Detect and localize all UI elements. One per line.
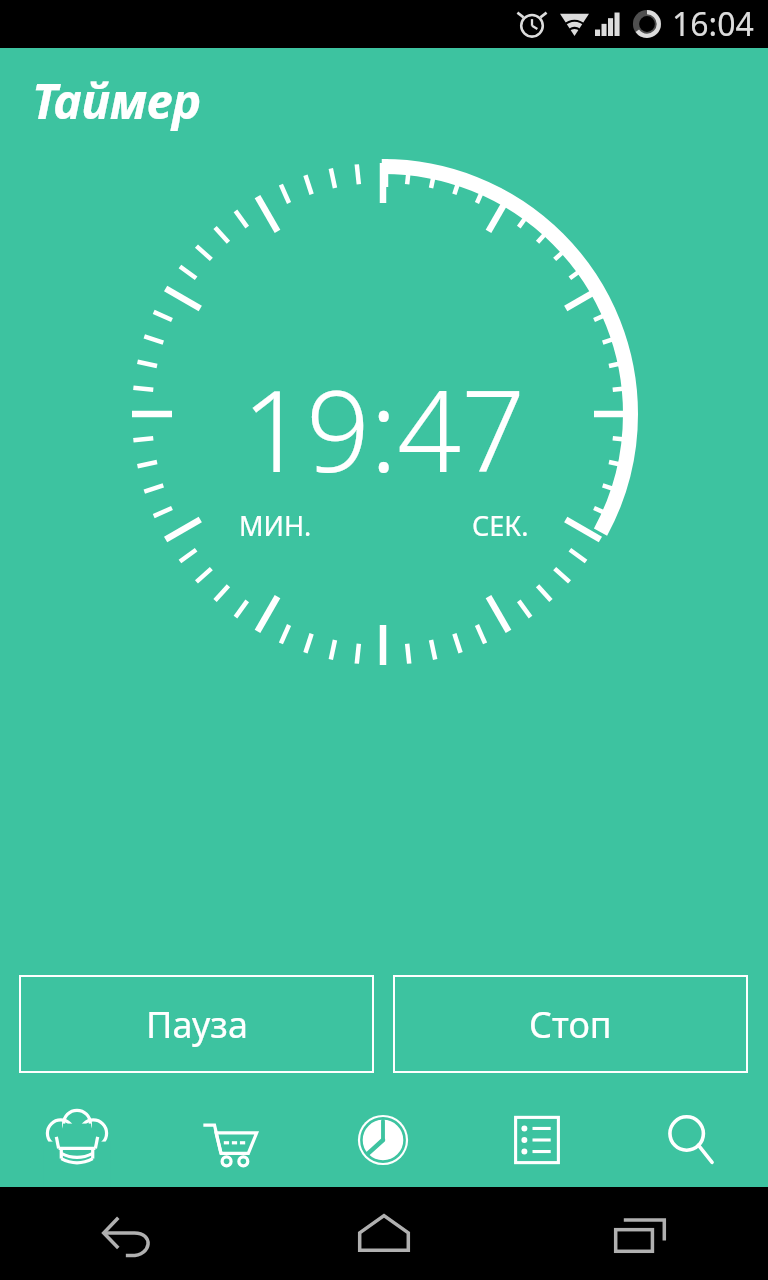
staticText: 19:47 — [242, 352, 526, 505]
button[interactable]: Стоп — [394, 976, 747, 1072]
staticText: МИН. — [239, 507, 312, 544]
staticText: Стоп — [529, 1000, 612, 1049]
staticText: 16:04 — [672, 2, 754, 46]
staticText: Таймер — [32, 68, 202, 133]
staticText: Пауза — [146, 1000, 248, 1049]
button[interactable]: Recents — [512, 1187, 768, 1280]
button[interactable]: Search — [614, 1092, 768, 1187]
button[interactable]: Timer — [306, 1092, 460, 1187]
button[interactable]: Back — [0, 1187, 256, 1280]
button[interactable]: Пауза — [20, 976, 373, 1072]
staticText: СЕК. — [472, 507, 529, 544]
button[interactable]: Home — [256, 1187, 512, 1280]
button[interactable]: Shopping cart — [153, 1092, 306, 1187]
button[interactable]: List — [460, 1092, 614, 1187]
button[interactable]: Recipes — [0, 1092, 153, 1187]
